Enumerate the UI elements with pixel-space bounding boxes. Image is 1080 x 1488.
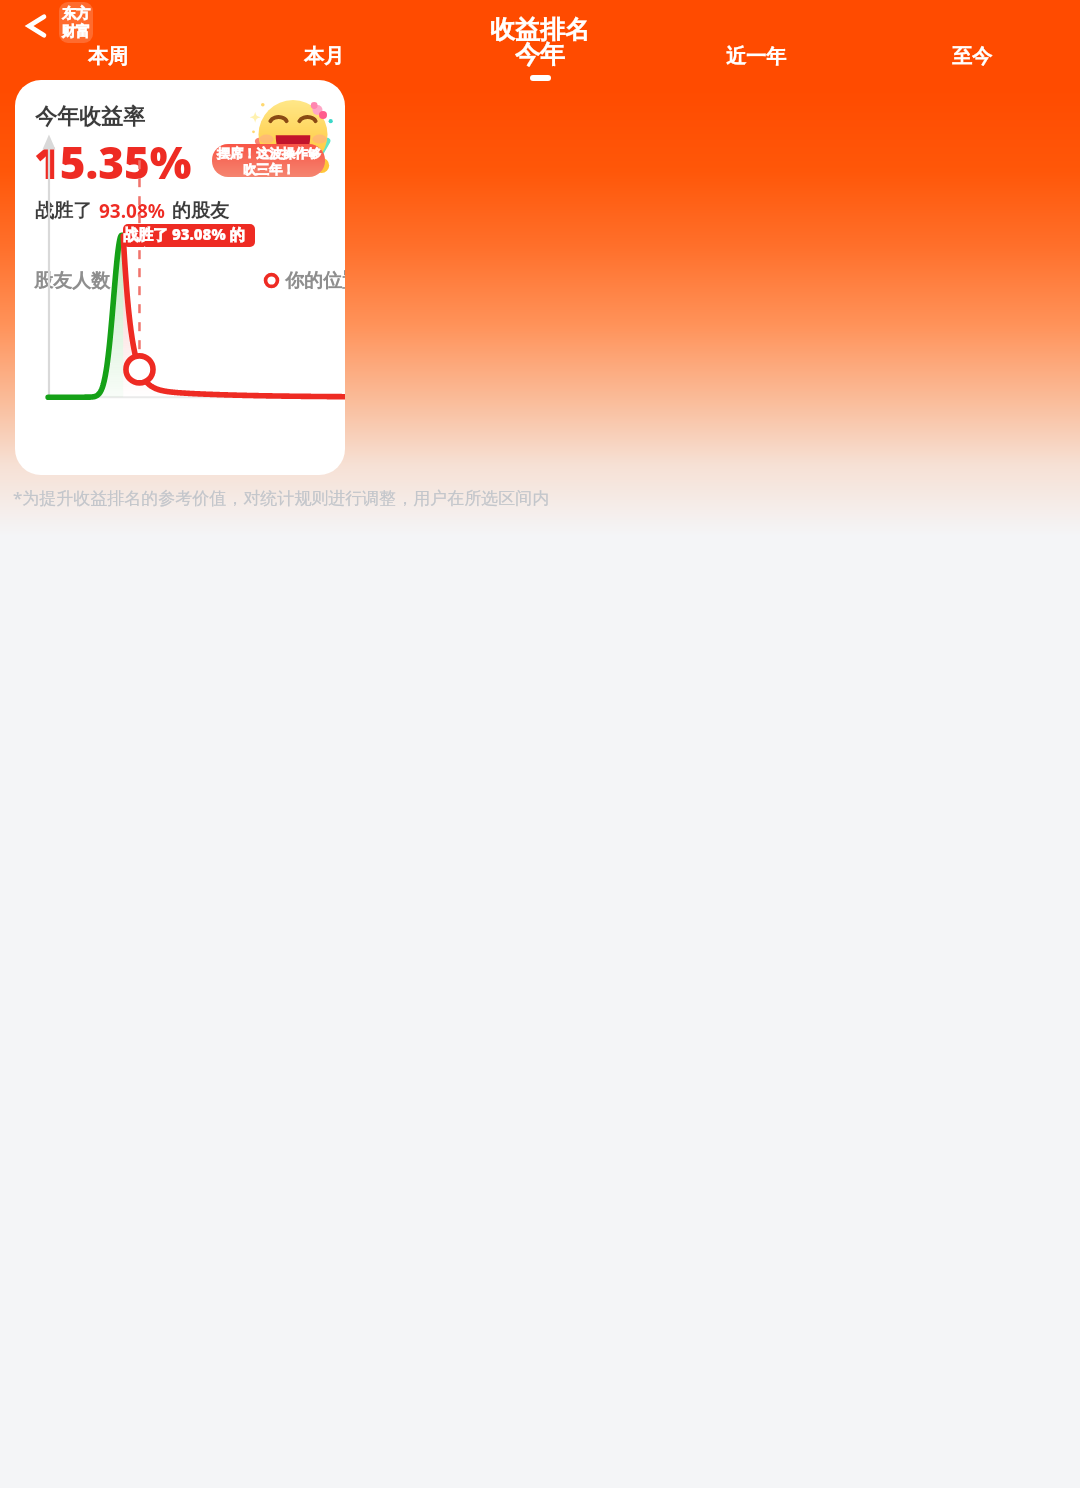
staticText: 今年收益率 [35,103,145,131]
staticText: 东方 [62,5,90,23]
button[interactable]: 至今 [864,36,1080,98]
staticText: 财富 [62,23,90,41]
staticText: 的股友 [172,199,229,223]
staticText: 近一年 [726,44,786,69]
staticText: 战胜了 93.08% 的股友 [123,224,255,247]
staticText: 本月 [304,44,344,69]
staticText: 至今 [952,44,992,69]
staticText: 今年 [515,39,565,70]
button[interactable]: 近一年 [648,36,864,98]
staticText: *为提升收益排名的参考价值，对统计规则进行调整，用户在所选区间内 [13,486,550,509]
staticText: 93.08% [99,198,165,224]
staticText: 股友人数 [34,269,110,293]
staticText: 本周 [88,44,128,69]
staticText: 15.35% [34,132,192,192]
staticText: 吹三年！ [243,161,295,177]
button[interactable]: 本月 [216,36,432,98]
staticText: 摆席！这波操作够 [217,145,321,161]
button[interactable]: 本周 [0,36,216,98]
button[interactable]: 今年 [432,36,648,98]
button[interactable]: 返回 [11,4,55,48]
staticText: 战胜了 [35,199,92,223]
button[interactable]: 东方财富 [59,2,93,43]
staticText: 收益排名 [490,14,590,45]
staticText: 你的位置 [285,269,345,293]
